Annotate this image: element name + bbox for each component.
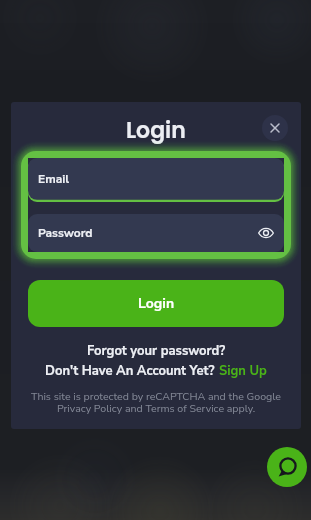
staticText: Email — [38, 171, 70, 187]
staticText: Login — [126, 115, 186, 146]
button[interactable]: Close — [262, 115, 288, 141]
button[interactable]: Login — [28, 280, 284, 327]
staticText: Don't Have An Account Yet? — [45, 362, 219, 380]
button[interactable]: Chat support — [267, 447, 307, 487]
button[interactable]: Password — [28, 214, 284, 252]
staticText: Password — [38, 225, 93, 241]
button[interactable]: Forgot your password? — [87, 342, 226, 360]
staticText: Login — [138, 294, 175, 313]
button[interactable]: Email — [28, 158, 284, 202]
button[interactable]: Show password — [256, 223, 276, 243]
button[interactable]: Sign Up — [219, 362, 267, 380]
staticText: This site is protected by reCAPTCHA and … — [31, 389, 281, 415]
